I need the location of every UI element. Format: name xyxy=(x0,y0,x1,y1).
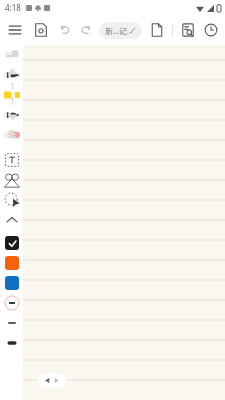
button[interactable]: Blue colour xyxy=(0,273,23,293)
button[interactable]: Search notes xyxy=(178,20,198,40)
staticText: 4:18 xyxy=(5,2,21,13)
button[interactable]: Collapse panel xyxy=(0,49,24,63)
button[interactable]: Brush pen xyxy=(0,105,23,125)
button[interactable]: Next layer xyxy=(0,109,24,125)
button[interactable]: Layer number xyxy=(0,79,24,94)
button[interactable]: Eraser tool xyxy=(0,45,23,65)
button[interactable]: Stroke width thick xyxy=(0,333,23,353)
button[interactable]: Previous layer xyxy=(0,63,24,79)
button[interactable]: Stroke width medium xyxy=(0,293,23,313)
button[interactable]: History xyxy=(202,20,220,40)
button[interactable]: 新…记 xyxy=(99,22,142,39)
button[interactable]: Text box xyxy=(0,150,23,170)
staticText: 1 xyxy=(10,81,15,92)
button[interactable]: Camera note xyxy=(31,20,51,40)
button[interactable]: Layers xyxy=(0,125,24,143)
button[interactable]: Shapes xyxy=(0,170,23,190)
staticText: 新…记 xyxy=(105,25,128,36)
button[interactable]: Fountain pen xyxy=(0,65,23,85)
button[interactable]: Total layers xyxy=(0,94,24,109)
staticText: 1 xyxy=(10,96,15,107)
button[interactable]: Stroke width thin xyxy=(0,313,23,333)
button[interactable]: Orange colour xyxy=(0,253,23,273)
button[interactable]: Undo xyxy=(55,20,75,40)
button[interactable]: Redo xyxy=(76,20,96,40)
button[interactable]: Collapse xyxy=(0,210,23,230)
button[interactable]: Eraser xyxy=(0,125,23,145)
button[interactable]: Lasso select xyxy=(0,190,23,210)
button[interactable]: Highlighter xyxy=(0,85,23,105)
button[interactable]: Page navigation xyxy=(38,373,66,388)
button[interactable]: Black colour xyxy=(0,233,23,253)
button[interactable]: Menu xyxy=(5,20,25,40)
button[interactable]: New page xyxy=(147,20,167,40)
